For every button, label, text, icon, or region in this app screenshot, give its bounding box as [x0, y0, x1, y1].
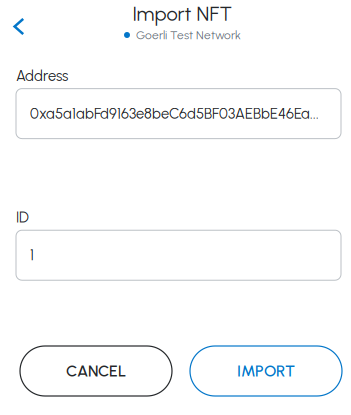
staticText: Goerli Test Network	[136, 28, 241, 42]
staticText: Import NFT	[132, 2, 232, 26]
button[interactable]: CANCEL	[20, 346, 172, 396]
staticText: CANCEL	[66, 361, 126, 381]
button[interactable]: Back	[0, 0, 37, 44]
staticText: Address	[16, 67, 68, 85]
staticText: IMPORT	[237, 361, 295, 381]
staticText: 1	[30, 246, 34, 264]
button[interactable]: IMPORT	[190, 346, 342, 396]
staticText: ID	[16, 209, 29, 226]
staticText: 0xa5a1abFd9163e8beC6d5BF03AEBbE46Ea...	[30, 105, 319, 122]
